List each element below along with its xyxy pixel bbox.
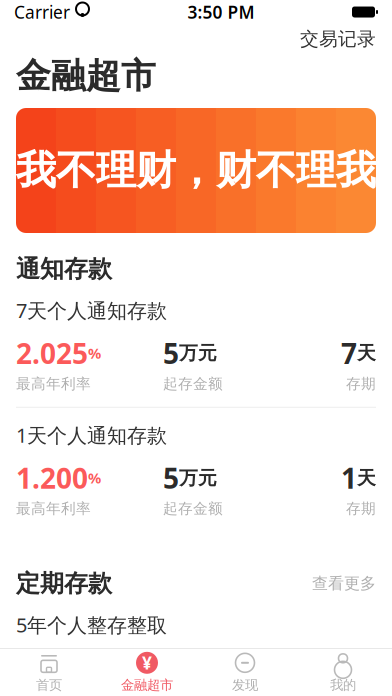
staticText: 起存金额 [163, 499, 223, 517]
staticText: 7 [341, 335, 357, 372]
staticText: 1天个人通知存款 [16, 422, 167, 448]
button[interactable]: 1天个人通知存款 [0, 408, 392, 532]
button[interactable]: 交易记录 [284, 22, 392, 55]
staticText: 通知存款 [16, 254, 112, 284]
staticText: 天 [357, 466, 376, 489]
button[interactable]: ¥ [98, 649, 196, 696]
staticText: 1 [341, 459, 357, 496]
staticText: 我不理财，财不理我 [16, 146, 376, 195]
staticText: 金融超市 [16, 55, 156, 97]
staticText: 万元 [179, 466, 217, 489]
staticText: 1.200 [16, 459, 88, 496]
staticText: 最高年利率 [16, 375, 91, 393]
staticText: 存期 [346, 499, 376, 517]
staticText: 起存金额 [163, 375, 223, 393]
button[interactable]: 我的 [294, 649, 392, 696]
button[interactable]: 查看更多 [300, 570, 376, 597]
staticText: 交易记录 [300, 27, 376, 50]
staticText: 5 [163, 335, 179, 372]
staticText: 2.025 [16, 335, 88, 372]
staticText: 定期存款 [16, 569, 112, 598]
staticText: ¥ [142, 651, 152, 674]
staticText: 我的 [330, 677, 356, 693]
staticText: 最高年利率 [16, 499, 91, 517]
staticText: 首页 [36, 677, 62, 693]
button[interactable]: 7天个人通知存款 [0, 283, 392, 407]
staticText: 天 [357, 342, 376, 365]
button[interactable]: 我不理财，财不理我 [0, 98, 392, 233]
staticText: % [88, 343, 101, 363]
staticText: 金融超市 [121, 677, 173, 693]
staticText: 查看更多 [312, 574, 376, 593]
staticText: Carrier [14, 0, 70, 23]
staticText: 发现 [232, 677, 258, 693]
staticText: 万元 [179, 342, 217, 365]
staticText: 7天个人通知存款 [16, 297, 167, 324]
staticText: % [88, 468, 101, 488]
staticText: 3:50 PM [187, 0, 254, 23]
button[interactable]: 发现 [196, 649, 294, 696]
button[interactable]: 首页 [0, 649, 98, 696]
staticText: 5 [163, 459, 179, 496]
staticText: 5年个人整存整取 [16, 611, 167, 638]
staticText: 存期 [346, 375, 376, 393]
